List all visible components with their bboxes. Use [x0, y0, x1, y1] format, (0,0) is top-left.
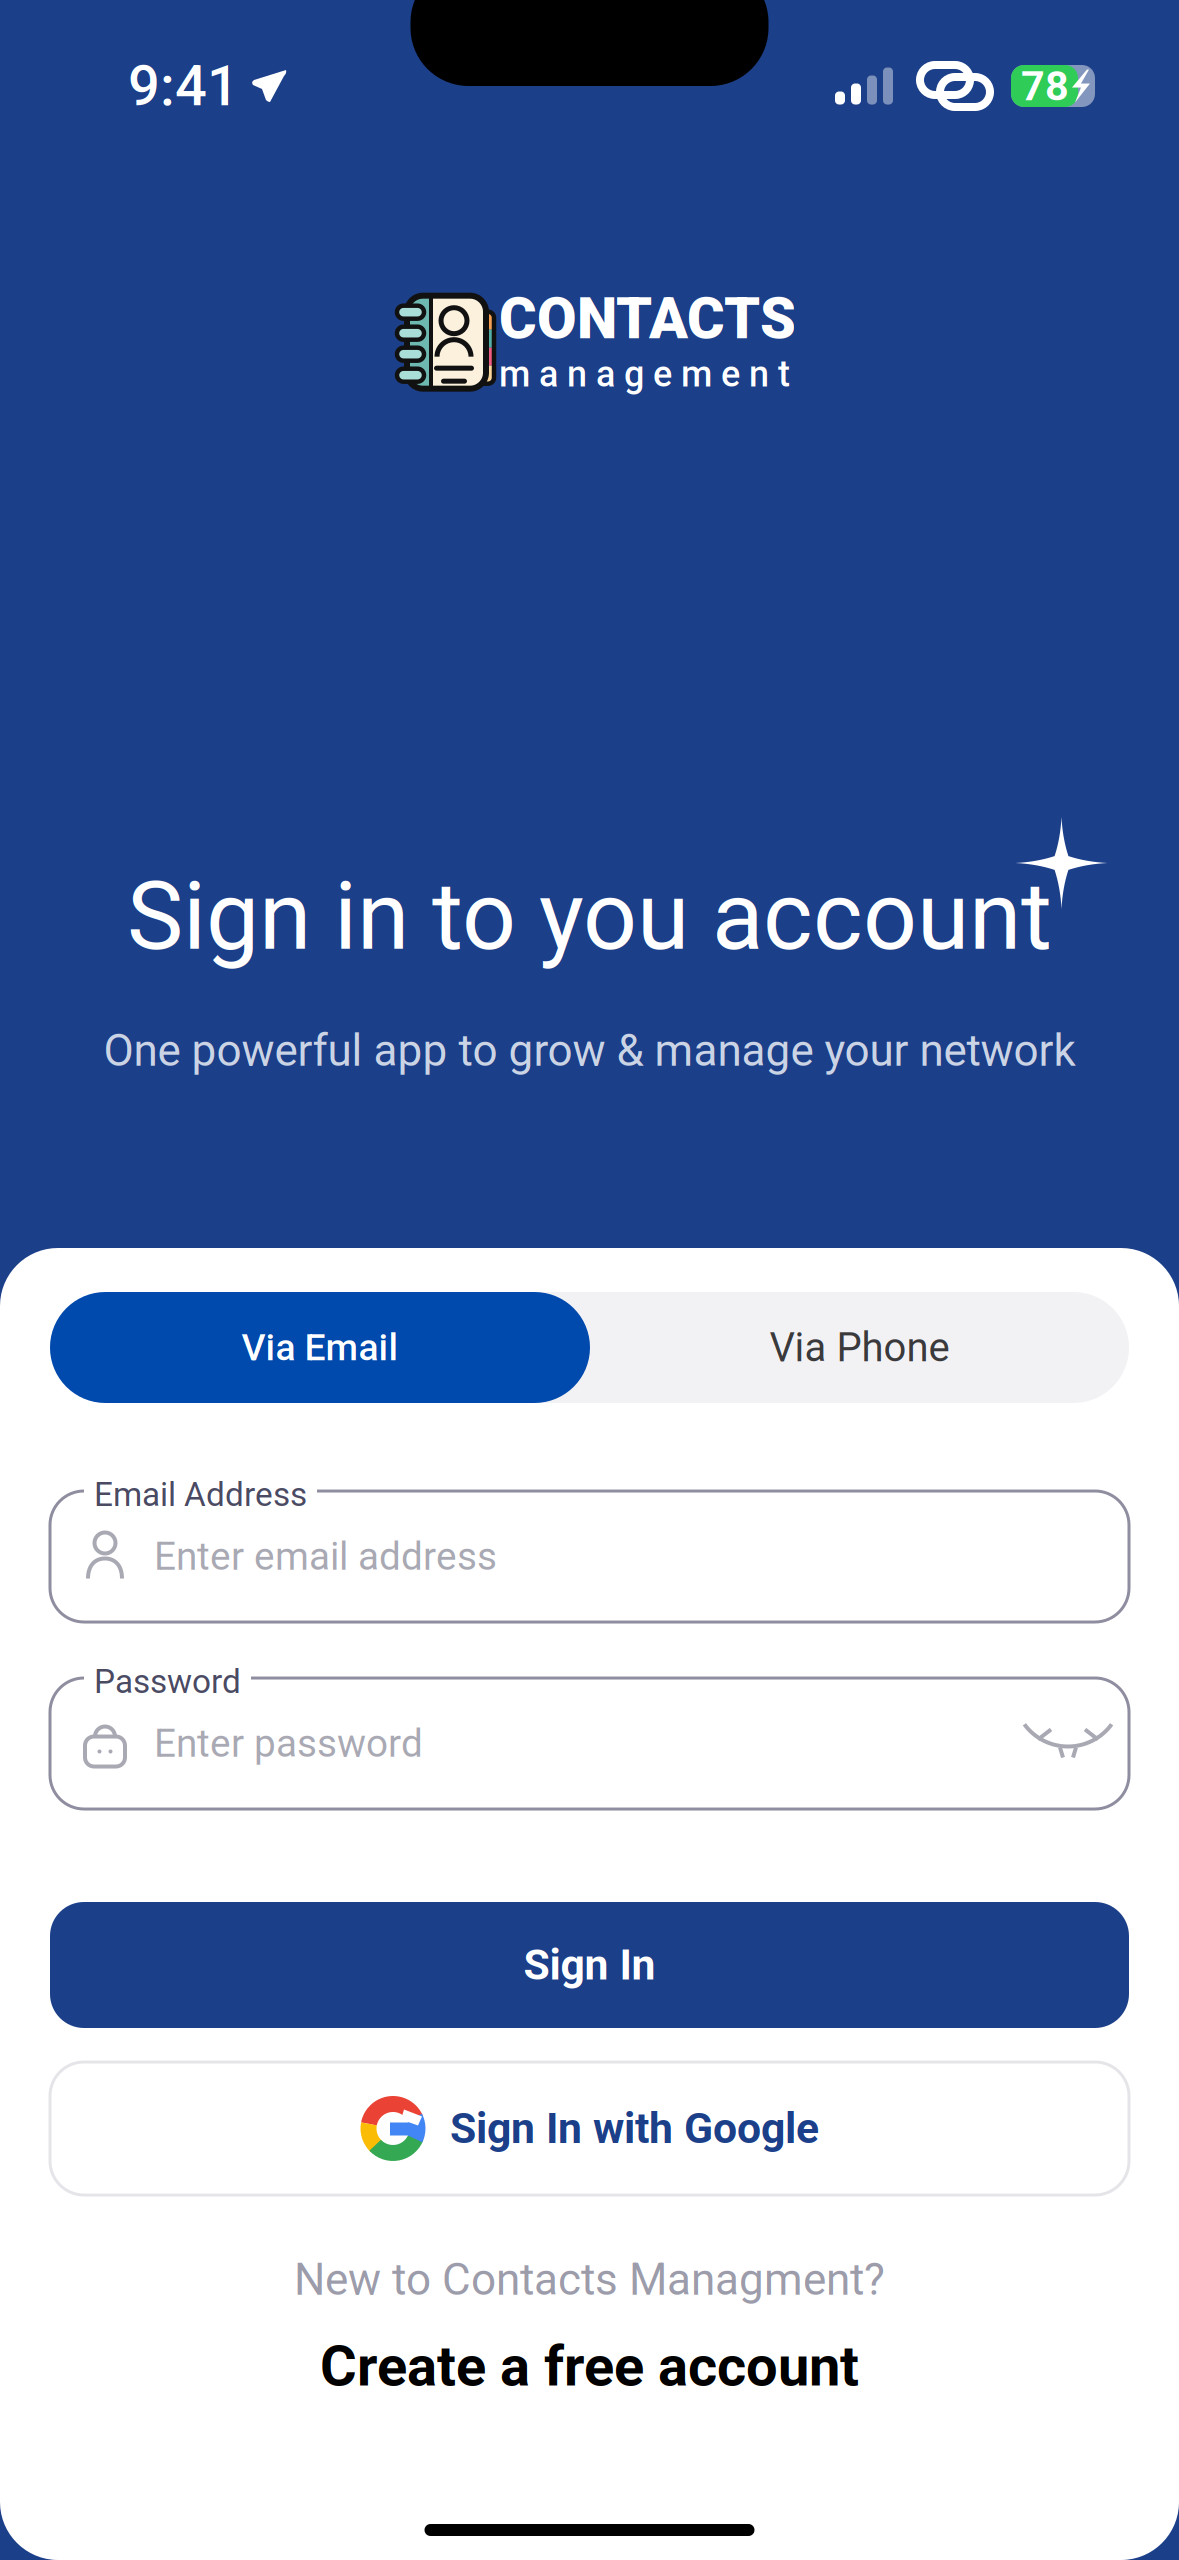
staticText: CONTACTS [499, 285, 796, 352]
staticText: Enter email address [154, 1534, 497, 1579]
staticText: Via Email [241, 1326, 398, 1369]
button[interactable]: Create a free account [320, 2334, 859, 2399]
staticText: 78 [1021, 62, 1069, 110]
staticText: m a n a g e m e n t [499, 353, 790, 395]
staticText: One powerful app to grow & manage your n… [103, 1025, 1075, 1076]
staticText: New to Contacts Managment? [294, 2254, 885, 2306]
button[interactable]: Via Email [50, 1292, 590, 1403]
staticText: Sign In with Google [450, 2103, 819, 2153]
staticText: Via Phone [769, 1324, 949, 1371]
staticText: Password [94, 1662, 241, 1701]
button[interactable]: Sign In with Google [50, 2062, 1129, 2195]
staticText: 9:41 [128, 53, 239, 119]
staticText: Enter password [154, 1721, 423, 1766]
button[interactable]: Via Phone [590, 1292, 1129, 1403]
staticText: Sign in to you account [127, 861, 1052, 972]
staticText: Sign In [523, 1940, 655, 1990]
button[interactable]: Sign In [50, 1902, 1129, 2028]
staticText: Email Address [94, 1475, 307, 1514]
staticText: Create a free account [320, 2334, 859, 2399]
